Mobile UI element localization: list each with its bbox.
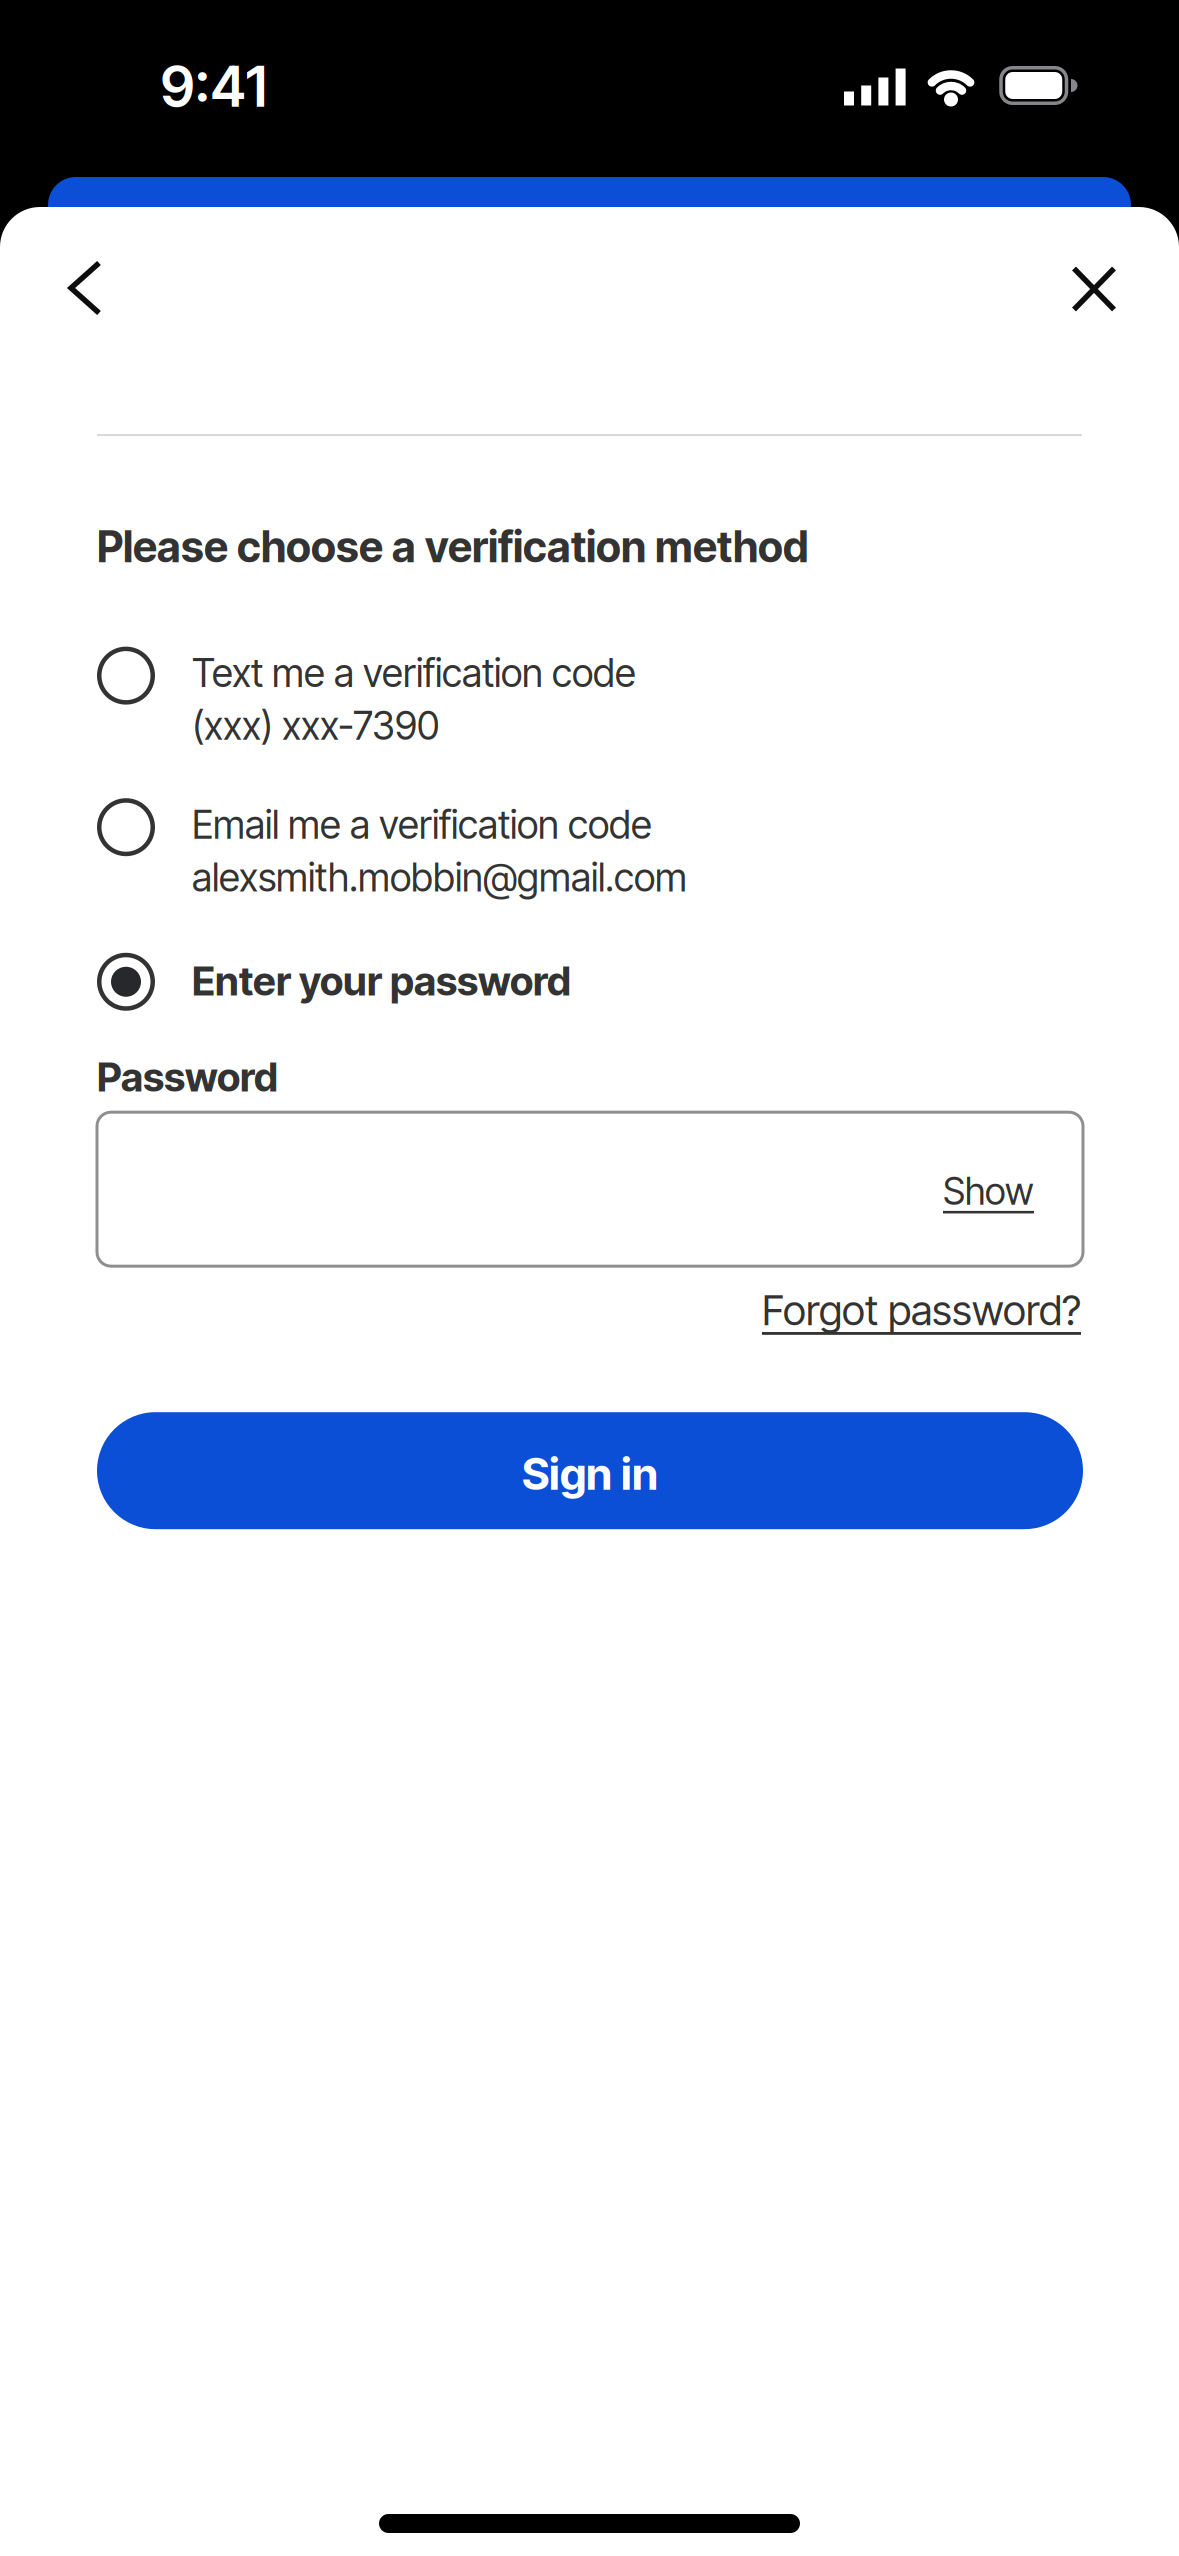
- staticText: alexsmith.mobbin@gmail.com: [192, 854, 687, 901]
- staticText: Please choose a verification method: [97, 521, 809, 573]
- staticText: Forgot password?: [762, 1285, 1081, 1335]
- button[interactable]: Back: [41, 245, 129, 333]
- staticText: Text me a verification code: [192, 650, 636, 696]
- button[interactable]: Text me a verification code: [0, 650, 636, 749]
- staticText: Email me a verification code: [192, 801, 652, 848]
- staticText: Enter your password: [192, 957, 571, 1005]
- button[interactable]: Email me a verification code: [0, 801, 687, 901]
- staticText: (xxx) xxx-7390: [192, 702, 439, 749]
- staticText: Sign in: [522, 1447, 658, 1500]
- button[interactable]: Password: [97, 1112, 1083, 1266]
- staticText: 9:41: [160, 53, 267, 120]
- button[interactable]: Close: [1050, 245, 1138, 333]
- button[interactable]: Sign in: [97, 1412, 1083, 1529]
- button[interactable]: Enter your password: [0, 957, 571, 1015]
- button[interactable]: Show: [943, 1169, 1083, 1214]
- staticText: Password: [97, 1053, 278, 1101]
- staticText: Show: [943, 1169, 1034, 1214]
- button[interactable]: Forgot password?: [762, 1285, 1081, 1335]
